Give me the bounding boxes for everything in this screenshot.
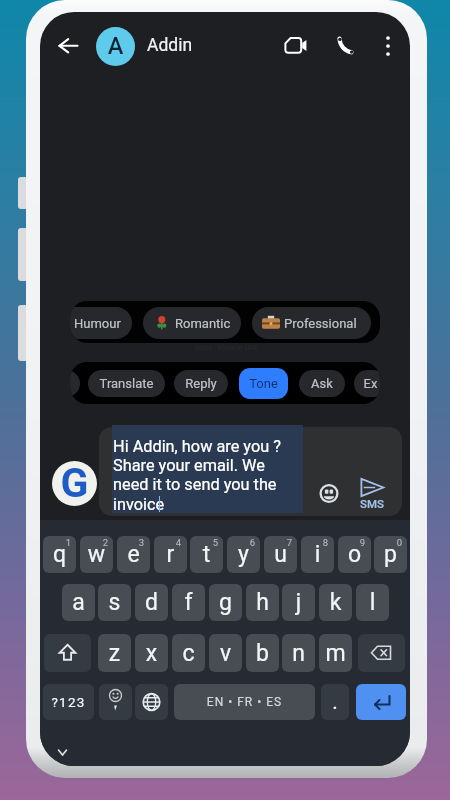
- staticText: Humour: [74, 316, 121, 331]
- button[interactable]: [99, 427, 402, 516]
- staticText: u: [264, 541, 297, 573]
- button[interactable]: .: [321, 684, 349, 720]
- staticText: a: [62, 589, 95, 621]
- button[interactable]: More options: [375, 28, 401, 64]
- staticText: 1: [64, 537, 73, 553]
- staticText: SMS: [355, 497, 389, 517]
- staticText: j: [282, 589, 315, 621]
- button[interactable]: Tone: [239, 368, 288, 399]
- button[interactable]: [356, 684, 406, 720]
- staticText: n: [282, 640, 315, 672]
- button[interactable]: o: [338, 536, 371, 573]
- button[interactable]: Translate: [88, 370, 165, 397]
- staticText: 5: [211, 537, 220, 553]
- staticText: 6: [248, 537, 257, 553]
- button[interactable]: b: [246, 634, 279, 672]
- button[interactable]: j: [282, 584, 315, 621]
- staticText: l: [356, 589, 389, 621]
- button[interactable]: q: [43, 536, 76, 573]
- staticText: ?123: [43, 694, 94, 717]
- button[interactable]: m: [319, 634, 352, 672]
- staticText: 8: [321, 537, 330, 553]
- button[interactable]: w: [80, 536, 113, 573]
- staticText: 0: [395, 537, 404, 553]
- button[interactable]: Ex: [354, 370, 380, 397]
- button[interactable]: Ask: [299, 370, 345, 397]
- staticText: 4: [174, 537, 183, 553]
- staticText: k: [319, 589, 352, 621]
- button[interactable]: y: [227, 536, 260, 573]
- button[interactable]: [44, 634, 91, 672]
- staticText: Share your email. We: [113, 456, 265, 475]
- staticText: z: [98, 640, 131, 672]
- staticText: o: [338, 541, 371, 573]
- button[interactable]: Send SMS: [354, 472, 388, 514]
- staticText: h: [246, 589, 279, 621]
- staticText: .: [321, 690, 349, 720]
- button[interactable]: [99, 684, 132, 720]
- staticText: G: [52, 459, 97, 504]
- button[interactable]: Professional: [252, 307, 371, 339]
- button[interactable]: l: [356, 584, 389, 621]
- button[interactable]: A: [96, 27, 196, 67]
- button[interactable]: EN • FR • ES: [174, 684, 315, 720]
- button[interactable]: z: [98, 634, 131, 672]
- staticText: v: [209, 640, 242, 672]
- staticText: Reply: [174, 376, 228, 397]
- button[interactable]: a: [62, 584, 95, 621]
- staticText: Ask: [299, 376, 345, 397]
- button[interactable]: h: [246, 584, 279, 621]
- button[interactable]: s: [98, 584, 131, 621]
- button[interactable]: Emoji: [314, 477, 344, 507]
- staticText: x: [135, 640, 168, 672]
- button[interactable]: [358, 634, 405, 672]
- button[interactable]: Back: [53, 28, 85, 64]
- staticText: Add: [70, 376, 80, 397]
- staticText: y: [227, 541, 260, 573]
- button[interactable]: ?123: [43, 684, 94, 720]
- button[interactable]: d: [135, 584, 168, 621]
- button[interactable]: u: [264, 536, 297, 573]
- button[interactable]: v: [209, 634, 242, 672]
- staticText: t: [190, 541, 223, 573]
- staticText: Tone: [239, 376, 288, 398]
- button[interactable]: g: [209, 584, 242, 621]
- button[interactable]: Add: [70, 370, 80, 397]
- button[interactable]: x: [135, 634, 168, 672]
- button[interactable]: Gboard: [52, 461, 97, 506]
- staticText: 2: [101, 537, 110, 553]
- button[interactable]: k: [319, 584, 352, 621]
- button[interactable]: Reply: [174, 370, 228, 397]
- button[interactable]: Romantic: [143, 307, 241, 339]
- staticText: s: [98, 589, 131, 621]
- staticText: 3: [137, 537, 146, 553]
- button[interactable]: n: [282, 634, 315, 672]
- staticText: c: [172, 640, 205, 672]
- button[interactable]: f: [172, 584, 205, 621]
- staticText: invoice: [113, 495, 165, 514]
- staticText: Romantic: [175, 316, 231, 331]
- button[interactable]: Call: [331, 28, 361, 64]
- staticText: r: [154, 541, 187, 573]
- button[interactable]: Humour: [70, 307, 132, 339]
- staticText: d: [135, 589, 168, 621]
- button[interactable]: p: [374, 536, 407, 573]
- button[interactable]: t: [190, 536, 223, 573]
- staticText: EN • FR • ES: [174, 695, 315, 715]
- button[interactable]: e: [117, 536, 150, 573]
- button[interactable]: r: [154, 536, 187, 573]
- staticText: e: [117, 541, 150, 573]
- staticText: f: [172, 589, 205, 621]
- staticText: need it to send you the: [113, 475, 277, 494]
- button[interactable]: [135, 684, 168, 720]
- staticText: A: [96, 32, 135, 72]
- staticText: m: [319, 640, 352, 672]
- staticText: Translate: [88, 376, 165, 397]
- button[interactable]: Video call: [277, 28, 313, 64]
- button[interactable]: c: [172, 634, 205, 672]
- staticText: w: [80, 541, 113, 573]
- staticText: Addin: [147, 35, 193, 56]
- staticText: b: [246, 640, 279, 672]
- button[interactable]: i: [301, 536, 334, 573]
- staticText: p: [374, 541, 407, 573]
